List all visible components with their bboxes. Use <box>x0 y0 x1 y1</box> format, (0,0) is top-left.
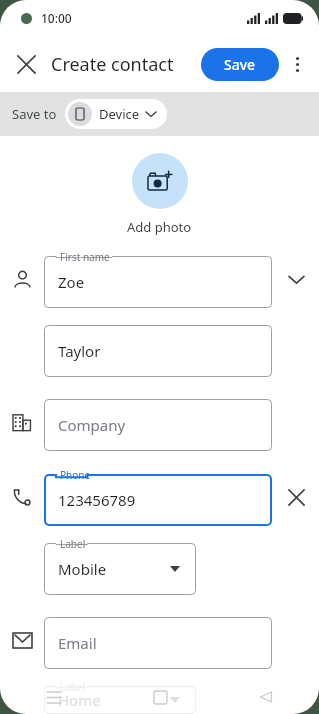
staticText: Phone <box>60 468 91 482</box>
button[interactable]: Back <box>213 680 319 714</box>
staticText: Zoe <box>58 272 85 292</box>
button[interactable]: Add photo <box>132 153 188 209</box>
staticText: Save <box>224 55 256 74</box>
button[interactable] <box>44 543 196 595</box>
staticText: Company <box>58 415 126 435</box>
button[interactable] <box>44 474 272 526</box>
staticText: Save to <box>12 105 57 123</box>
staticText: First name <box>60 250 110 264</box>
staticText: Label <box>60 680 86 694</box>
staticText: Taylor <box>58 341 101 361</box>
staticText: Create contact <box>51 52 174 77</box>
button[interactable] <box>44 617 272 669</box>
button[interactable] <box>44 686 196 714</box>
button[interactable]: Home <box>107 680 213 714</box>
staticText: Add photo <box>127 218 192 236</box>
button[interactable]: Device <box>65 99 167 129</box>
button[interactable] <box>44 325 272 377</box>
button[interactable]: Save <box>201 48 279 81</box>
staticText: Label <box>60 537 86 551</box>
button[interactable]: Close <box>6 44 46 84</box>
staticText: Home <box>58 690 101 710</box>
button[interactable]: Expand name fields <box>276 259 316 299</box>
staticText: 10:00 <box>41 10 72 26</box>
button[interactable] <box>44 256 272 308</box>
button[interactable]: Recents <box>0 680 107 714</box>
staticText: 123456789 <box>58 490 136 510</box>
button[interactable] <box>44 399 272 451</box>
button[interactable]: More options <box>279 46 315 82</box>
staticText: Device <box>99 105 140 123</box>
staticText: Mobile <box>58 559 107 579</box>
button[interactable]: Clear phone number <box>276 477 316 517</box>
staticText: Email <box>58 633 97 653</box>
